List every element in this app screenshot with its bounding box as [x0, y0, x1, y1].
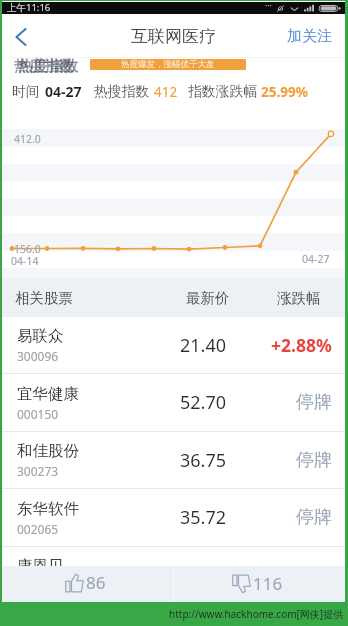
- staticText: 04-27: [302, 252, 330, 266]
- staticText: 易联众: [17, 326, 64, 346]
- staticText: 停牌: [296, 449, 332, 472]
- staticText: 涨跌幅: [277, 289, 321, 307]
- staticText: 最新价: [186, 289, 230, 307]
- staticText: 指数涨跌幅: [188, 83, 257, 100]
- staticText: 加关注: [287, 27, 332, 46]
- staticText: 时间: [12, 83, 40, 100]
- staticText: 9.96: [180, 563, 216, 588]
- button[interactable]: 和佳股份: [2, 432, 345, 489]
- staticText: 上午11:16: [7, 1, 51, 13]
- staticText: 300096: [17, 348, 59, 364]
- staticText: 04-14: [11, 254, 39, 268]
- staticText: 康恩贝: [17, 556, 64, 576]
- button[interactable]: 东华软件: [2, 489, 345, 547]
- staticText: ···: [265, 1, 272, 12]
- staticText: 相关股票: [15, 289, 73, 307]
- staticText: 热度爆发，涨幅优于大盘: [121, 59, 215, 70]
- staticText: 52.70: [180, 390, 227, 415]
- button[interactable]: 116: [174, 566, 345, 602]
- button[interactable]: 86: [2, 566, 173, 602]
- staticText: http://www.hackhome.com[网侠]提供: [169, 607, 344, 621]
- staticText: 000150: [17, 406, 59, 422]
- button[interactable]: 宜华健康: [2, 374, 345, 432]
- staticText: 412.0: [14, 132, 41, 146]
- staticText: 停牌: [296, 506, 332, 529]
- staticText: 热搜指数: [94, 83, 150, 100]
- staticText: 互联网医疗: [131, 26, 216, 47]
- button[interactable]: 康恩贝: [2, 547, 345, 602]
- staticText: 04-27: [45, 82, 82, 101]
- button[interactable]: 易联众: [2, 317, 345, 374]
- staticText: 300273: [17, 463, 59, 479]
- staticText: 21.40: [180, 333, 227, 358]
- staticText: 和佳股份: [17, 441, 79, 461]
- staticText: 停牌: [296, 564, 332, 587]
- staticText: 停牌: [296, 391, 332, 414]
- staticText: 热度指数: [18, 57, 78, 76]
- staticText: 东华软件: [17, 499, 79, 519]
- staticText: 412: [154, 83, 178, 101]
- staticText: 116: [253, 572, 283, 595]
- staticText: 35.72: [180, 505, 227, 530]
- staticText: +2.88%: [271, 333, 332, 357]
- button[interactable]: 加关注: [275, 15, 345, 58]
- staticText: 热度指数: [14, 57, 74, 76]
- staticText: 156.0: [14, 242, 41, 256]
- staticText: 002065: [17, 521, 59, 537]
- staticText: 36.75: [180, 448, 227, 473]
- staticText: 25.99%: [261, 83, 308, 101]
- staticText: 86: [86, 571, 106, 594]
- button[interactable]: Back: [2, 15, 42, 58]
- staticText: 宜华健康: [17, 384, 79, 404]
